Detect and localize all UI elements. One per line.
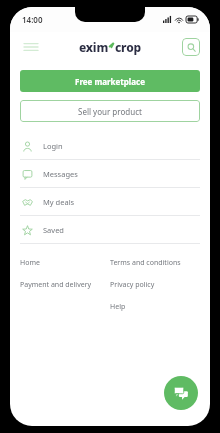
button[interactable]: My deals (20, 188, 200, 215)
staticText: Privacy policy (110, 280, 155, 290)
button[interactable]: Privacy policy (110, 274, 155, 296)
button[interactable]: Sell your product (20, 100, 200, 122)
staticText: Free marketplace (75, 76, 145, 87)
button[interactable]: Home (20, 252, 40, 274)
staticText: Messages (43, 169, 78, 179)
staticText: Help (110, 302, 126, 312)
staticText: Home (20, 258, 40, 268)
staticText: Login (43, 141, 63, 151)
button[interactable]: Terms and conditions (110, 252, 181, 274)
staticText: Sell your product (78, 106, 142, 117)
button[interactable]: Messages (20, 160, 200, 187)
staticText: exim (79, 39, 109, 55)
staticText: crop (115, 39, 141, 55)
button[interactable]: Help (110, 296, 126, 318)
staticText: Terms and conditions (110, 258, 181, 268)
staticText: 14:00 (22, 14, 43, 25)
staticText: Saved (43, 225, 64, 235)
button[interactable]: Menu (20, 36, 42, 58)
button[interactable]: Login (20, 132, 200, 159)
button[interactable]: Payment and delivery (20, 274, 92, 296)
button[interactable]: Saved (20, 216, 200, 243)
button[interactable]: Free marketplace (20, 70, 200, 92)
button[interactable]: Search (182, 38, 200, 56)
button[interactable]: Open chat (164, 376, 198, 410)
staticText: My deals (43, 197, 75, 207)
staticText: Payment and delivery (20, 280, 92, 290)
